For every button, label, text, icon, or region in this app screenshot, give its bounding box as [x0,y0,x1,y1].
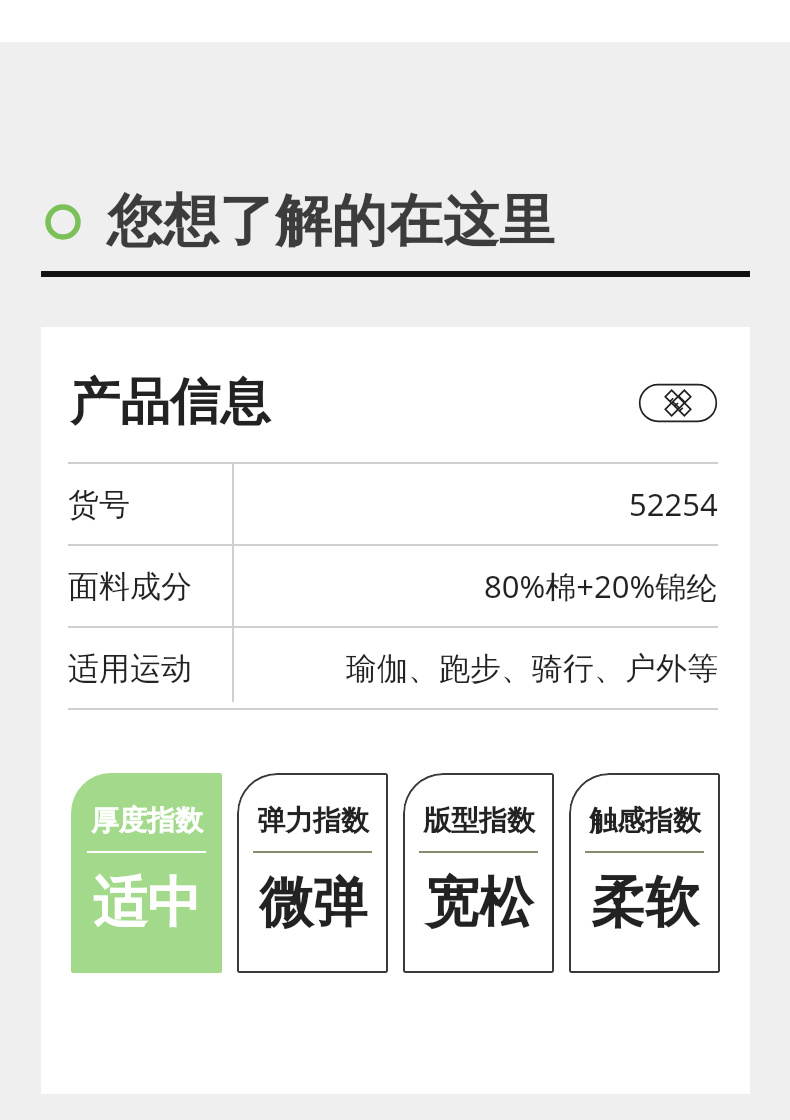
staticText: 瑜伽、跑步、骑行、户外等 [346,649,718,688]
button[interactable]: 版型指数 [403,773,554,973]
button[interactable]: 弹力指数 [237,773,388,973]
staticText: 80%棉+20%锦纶 [484,565,718,607]
staticText: 厚度指数 [91,803,203,838]
button[interactable]: 您想了解的在这里 [41,186,750,257]
staticText: 宽松 [425,869,533,937]
staticText: 弹力指数 [257,803,369,838]
staticText: 适中 [93,869,201,937]
button[interactable]: 适用运动 [68,628,718,708]
staticText: 触感指数 [589,803,701,838]
staticText: 面料成分 [68,567,192,606]
button[interactable]: 面料成分 [68,546,718,626]
button[interactable]: 厚度指数 [71,773,222,973]
staticText: 适用运动 [68,649,192,688]
staticText: 货号 [68,485,130,524]
staticText: 版型指数 [423,803,535,838]
button[interactable]: 触感指数 [569,773,720,973]
button[interactable]: 尺寸测量 [638,383,718,423]
staticText: 微弹 [259,869,367,937]
staticText: 柔软 [591,869,699,937]
button[interactable]: 货号 [68,464,718,544]
staticText: 52254 [629,483,718,525]
staticText: 产品信息 [70,371,270,434]
staticText: 您想了解的在这里 [107,186,555,257]
